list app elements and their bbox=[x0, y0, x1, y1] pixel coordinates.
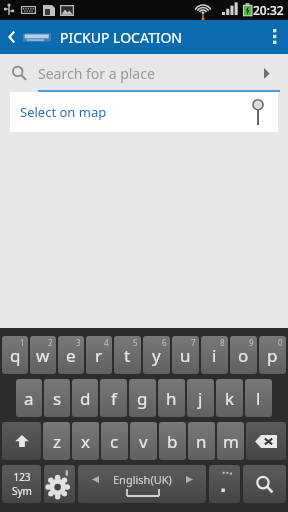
staticText: n bbox=[196, 430, 207, 453]
button[interactable]: b bbox=[159, 422, 186, 460]
button[interactable]: Search bbox=[243, 465, 286, 503]
staticText: m bbox=[223, 430, 239, 453]
button[interactable]: q bbox=[2, 336, 28, 374]
staticText: u bbox=[180, 344, 191, 367]
button[interactable]: x bbox=[72, 422, 99, 460]
button[interactable]: w bbox=[30, 336, 56, 374]
staticText: Search for a place bbox=[38, 64, 155, 83]
button[interactable]: h bbox=[158, 379, 185, 417]
staticText: 20:32 bbox=[253, 2, 284, 18]
button[interactable]: z bbox=[43, 422, 70, 460]
staticText: 8 bbox=[220, 337, 225, 348]
button[interactable]: c bbox=[101, 422, 128, 460]
staticText: 6 bbox=[162, 337, 167, 348]
staticText: English(UK) bbox=[113, 472, 172, 487]
button[interactable]: Navigate up bbox=[0, 20, 53, 54]
staticText: s bbox=[53, 387, 62, 410]
staticText: i bbox=[212, 344, 217, 367]
button[interactable]: 123 bbox=[2, 465, 41, 503]
button[interactable]: r bbox=[86, 336, 112, 374]
button[interactable]: Period bbox=[209, 465, 240, 503]
button[interactable]: g bbox=[129, 379, 156, 417]
button[interactable]: u bbox=[172, 336, 199, 374]
staticText: k bbox=[225, 387, 235, 410]
button[interactable]: e bbox=[58, 336, 84, 374]
button[interactable]: j bbox=[187, 379, 214, 417]
button[interactable]: p bbox=[259, 336, 286, 374]
staticText: j bbox=[198, 387, 203, 410]
staticText: Sym bbox=[12, 484, 32, 498]
staticText: 7 bbox=[191, 337, 196, 348]
staticText: c bbox=[110, 430, 119, 453]
staticText: w bbox=[36, 344, 50, 367]
button[interactable]: Search bbox=[244, 54, 288, 92]
staticText: g bbox=[137, 387, 148, 410]
staticText: a bbox=[24, 387, 34, 410]
staticText: 3 bbox=[76, 337, 81, 348]
staticText: 9 bbox=[249, 337, 254, 348]
button[interactable]: d bbox=[72, 379, 98, 417]
button[interactable]: a bbox=[16, 379, 42, 417]
button[interactable]: i bbox=[201, 336, 228, 374]
staticText: 2 bbox=[48, 337, 53, 348]
staticText: l bbox=[256, 387, 261, 410]
button[interactable]: m bbox=[217, 422, 244, 460]
staticText: d bbox=[80, 387, 91, 410]
button[interactable]: Shift bbox=[2, 422, 41, 460]
staticText: t bbox=[124, 344, 131, 367]
button[interactable]: n bbox=[188, 422, 215, 460]
button[interactable]: Search for a place bbox=[38, 54, 244, 92]
button[interactable]: l bbox=[245, 379, 272, 417]
button[interactable]: Space bbox=[78, 465, 206, 503]
staticText: PICKUP LOCATION bbox=[60, 28, 182, 47]
staticText: x bbox=[81, 430, 90, 453]
button[interactable]: Settings bbox=[44, 465, 75, 503]
staticText: Select on map bbox=[20, 103, 107, 121]
staticText: 123 bbox=[13, 470, 31, 484]
staticText: p bbox=[267, 344, 278, 367]
button[interactable]: Select on map bbox=[10, 92, 278, 132]
button[interactable]: t bbox=[114, 336, 141, 374]
staticText: e bbox=[66, 344, 76, 367]
staticText: 4 bbox=[104, 337, 109, 348]
staticText: q bbox=[10, 344, 21, 367]
staticText: 5 bbox=[133, 337, 138, 348]
staticText: h bbox=[166, 387, 177, 410]
staticText: y bbox=[152, 344, 161, 367]
button[interactable]: k bbox=[216, 379, 243, 417]
staticText: 1 bbox=[20, 337, 25, 348]
button[interactable]: Delete bbox=[246, 422, 286, 460]
staticText: f bbox=[111, 387, 117, 410]
staticText: 0 bbox=[278, 337, 283, 348]
staticText: o bbox=[238, 344, 249, 367]
button[interactable]: More options bbox=[262, 20, 288, 54]
button[interactable]: v bbox=[130, 422, 157, 460]
button[interactable]: o bbox=[230, 336, 257, 374]
staticText: b bbox=[167, 430, 178, 453]
staticText: v bbox=[139, 430, 148, 453]
button[interactable]: y bbox=[143, 336, 170, 374]
button[interactable]: f bbox=[100, 379, 127, 417]
button[interactable]: s bbox=[44, 379, 70, 417]
staticText: z bbox=[53, 430, 61, 453]
staticText: r bbox=[95, 344, 103, 367]
